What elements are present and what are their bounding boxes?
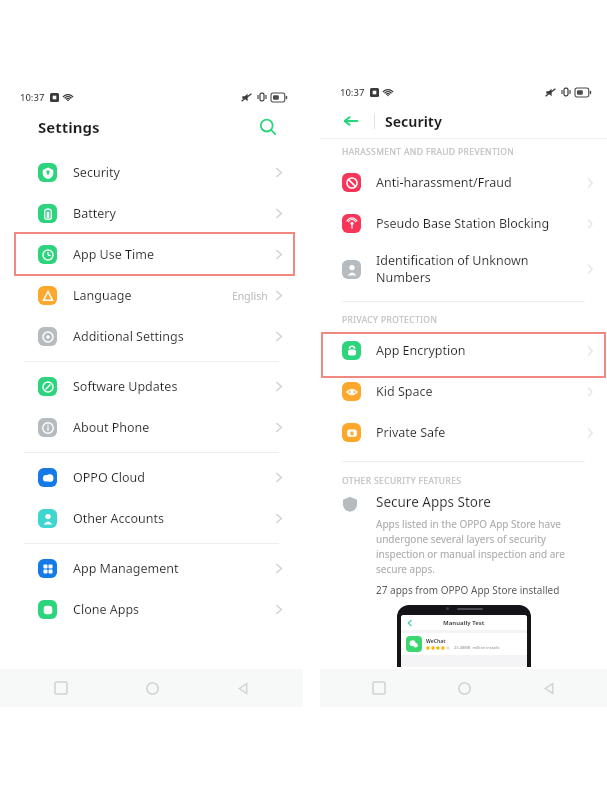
- button[interactable]: Back: [338, 108, 364, 134]
- button[interactable]: Language: [0, 275, 303, 316]
- staticText: Manually Test: [443, 619, 485, 627]
- staticText: Secure Apps Store: [376, 493, 491, 511]
- staticText: App Management: [73, 560, 179, 577]
- button[interactable]: Other Accounts: [0, 498, 303, 539]
- staticText: WeChat: [426, 638, 446, 645]
- staticText: Pseudo Base Station Blocking: [376, 215, 550, 232]
- staticText: Security: [73, 164, 120, 181]
- staticText: Settings: [38, 117, 100, 137]
- staticText: 10:37: [340, 86, 365, 99]
- button[interactable]: Private Safe: [320, 412, 607, 453]
- staticText: 10:37: [20, 91, 45, 104]
- staticText: PRIVACY PROTECTION: [342, 314, 438, 326]
- staticText: OPPO Cloud: [73, 469, 146, 486]
- button[interactable]: Home: [139, 675, 165, 701]
- staticText: Numbers: [376, 269, 431, 286]
- staticText: Other Accounts: [73, 510, 164, 527]
- staticText: Identification of Unknown: [376, 252, 529, 269]
- staticText: English: [232, 289, 268, 303]
- button[interactable]: Battery: [0, 193, 303, 234]
- button[interactable]: Recents: [366, 675, 392, 701]
- staticText: App Use Time: [73, 246, 154, 263]
- button[interactable]: Security: [0, 152, 303, 193]
- staticText: App Encryption: [376, 342, 466, 359]
- button[interactable]: Clone Apps: [0, 589, 303, 630]
- button[interactable]: Pseudo Base Station Blocking: [320, 203, 607, 244]
- staticText: Security: [385, 112, 442, 131]
- button[interactable]: Kid Space: [320, 371, 607, 412]
- staticText: HARASSMENT AND FRAUD PREVENTION: [342, 146, 515, 158]
- button[interactable]: Back: [229, 675, 255, 701]
- staticText: Software Updates: [73, 378, 178, 395]
- staticText: About Phone: [73, 419, 150, 436]
- button[interactable]: Identification of Unknown: [320, 244, 607, 294]
- button[interactable]: App Management: [0, 548, 303, 589]
- staticText: OTHER SECURITY FEATURES: [342, 475, 462, 487]
- button[interactable]: Additional Settings: [0, 316, 303, 357]
- staticText: Clone Apps: [73, 601, 140, 618]
- staticText: Apps listed in the OPPO App Store have u…: [376, 517, 591, 576]
- button[interactable]: Anti-harassment/Fraud: [320, 162, 607, 203]
- staticText: Battery: [73, 205, 116, 222]
- staticText: 23.48MB million installs: [454, 645, 500, 650]
- staticText: Language: [73, 287, 132, 304]
- staticText: Additional Settings: [73, 328, 184, 345]
- button[interactable]: Home: [451, 675, 477, 701]
- button[interactable]: OPPO Cloud: [0, 457, 303, 498]
- staticText: Private Safe: [376, 424, 446, 441]
- staticText: 27 apps from OPPO App Store installed: [376, 583, 560, 597]
- button[interactable]: App Encryption: [320, 330, 607, 371]
- button[interactable]: Back: [535, 675, 561, 701]
- button[interactable]: App Use Time: [0, 234, 303, 275]
- button[interactable]: Search: [255, 114, 281, 140]
- staticText: Anti-harassment/Fraud: [376, 174, 512, 191]
- button[interactable]: About Phone: [0, 407, 303, 448]
- staticText: Kid Space: [376, 383, 433, 400]
- button[interactable]: Recents: [48, 675, 74, 701]
- button[interactable]: Software Updates: [0, 366, 303, 407]
